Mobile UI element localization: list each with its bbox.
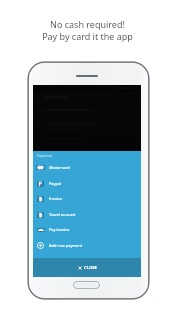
button[interactable]: Pay invoice (33, 221, 141, 237)
staticText: Mastercard (49, 165, 70, 170)
staticText: Travel account (49, 212, 76, 217)
button[interactable]: Invoice (33, 190, 141, 206)
staticText: Pay by card it the app (42, 30, 133, 42)
staticText: Add new payment (49, 243, 83, 248)
staticText: No cash required! (50, 18, 125, 30)
staticText: Payment (37, 153, 52, 158)
staticText: Pay invoice (49, 227, 70, 232)
staticText: Paypal (49, 181, 62, 186)
staticText: Invoice (49, 196, 63, 201)
staticText: CLOSE (84, 265, 97, 271)
button[interactable]: Travel account (33, 206, 141, 222)
button[interactable]: Mastercard (33, 159, 141, 175)
button[interactable]: Paypal (33, 175, 141, 191)
button[interactable]: CLOSE (33, 258, 141, 277)
button[interactable]: Add new payment (33, 237, 141, 253)
